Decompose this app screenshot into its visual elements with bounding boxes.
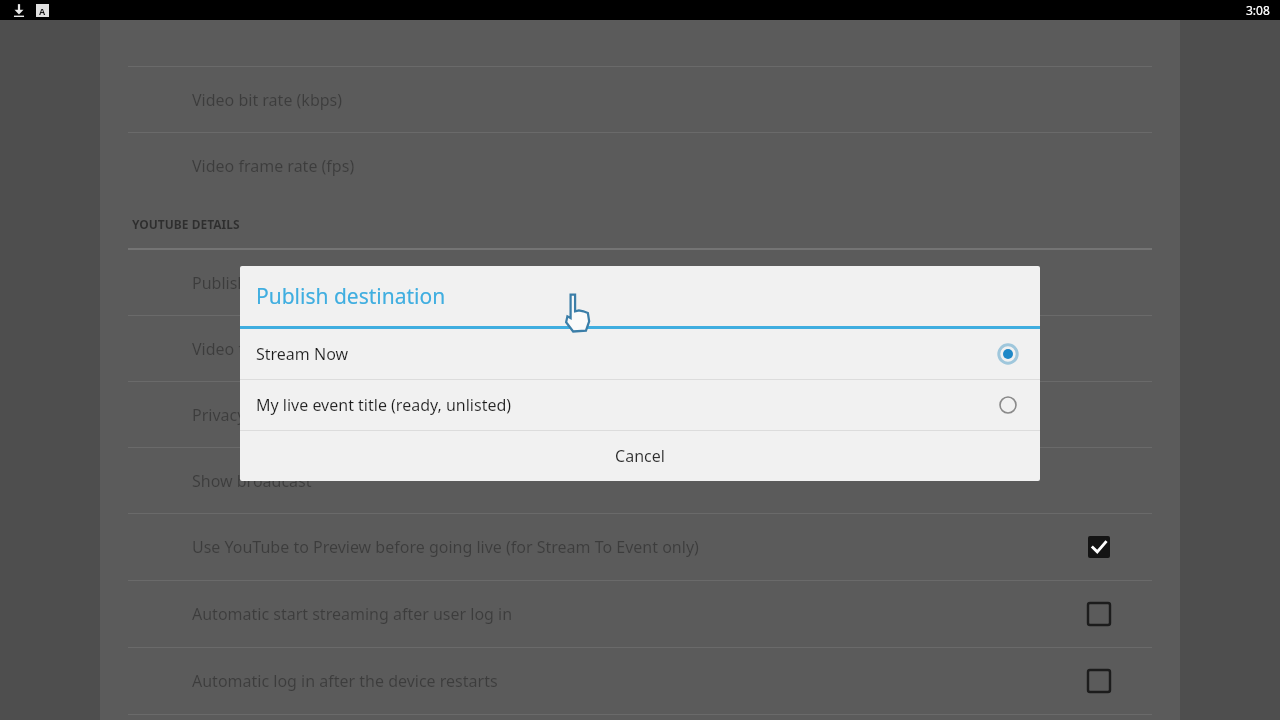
button[interactable]: Automatic log in after the device restar… bbox=[1088, 670, 1110, 692]
button[interactable]: Automatic log in after the device restar… bbox=[100, 648, 1180, 714]
staticText: Privacy bbox=[192, 404, 246, 426]
staticText: Use YouTube to Preview before going live… bbox=[192, 536, 699, 558]
staticText: Automatic log in after the device restar… bbox=[192, 670, 498, 692]
button[interactable]: Use YouTube to Preview before going live… bbox=[1088, 536, 1110, 558]
button[interactable]: Publish destination bbox=[100, 250, 1180, 315]
staticText: YOUTUBE DETAILS bbox=[132, 216, 240, 232]
staticText: Video bit rate (kbps) bbox=[192, 89, 343, 111]
staticText: A bbox=[39, 5, 46, 17]
staticText: Cancel bbox=[615, 445, 665, 467]
staticText: 3:08 bbox=[1246, 2, 1270, 18]
staticText: Video title bbox=[192, 338, 268, 360]
staticText: Show broadcast bbox=[192, 470, 312, 492]
button[interactable]: Show broadcast bbox=[100, 448, 1180, 513]
staticText: Publish destination bbox=[192, 272, 337, 294]
button[interactable]: Cancel bbox=[240, 431, 1040, 481]
staticText: Stream Now bbox=[256, 343, 349, 365]
staticText: Publish destination bbox=[256, 282, 446, 311]
staticText: My live event title (ready, unlisted) bbox=[256, 394, 512, 416]
button[interactable]: Privacy bbox=[100, 382, 1180, 447]
button[interactable]: Video title bbox=[100, 316, 1180, 381]
button[interactable]: Automatic start streaming after user log… bbox=[100, 581, 1180, 647]
button[interactable]: Automatic start streaming after user log… bbox=[1088, 603, 1110, 625]
button[interactable]: Stream Now bbox=[240, 329, 1040, 379]
button[interactable]: Use YouTube to Preview before going live… bbox=[100, 514, 1180, 580]
staticText: Video frame rate (fps) bbox=[192, 155, 355, 177]
button[interactable]: My live event title (ready, unlisted) bbox=[240, 380, 1040, 430]
staticText: Automatic start streaming after user log… bbox=[192, 603, 513, 625]
